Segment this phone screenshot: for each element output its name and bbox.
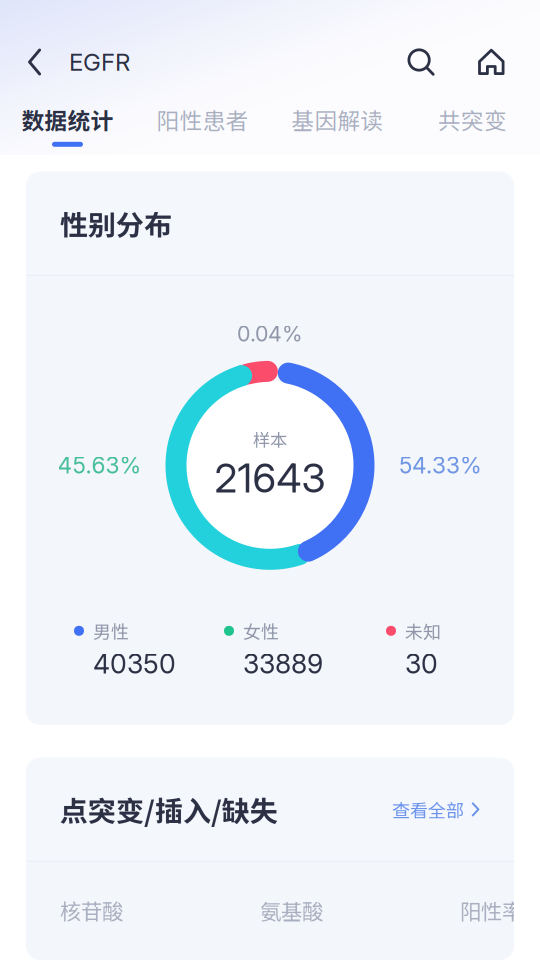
staticText: 样本 [253,427,287,452]
staticText: 21643 [214,454,325,502]
button[interactable]: 共突变 [405,97,540,155]
staticText: 女性 [243,618,279,644]
staticText: 基因解读 [291,103,383,136]
staticText: 未知 [405,618,441,644]
staticText: 30 [405,648,438,680]
staticText: EGFR [69,47,130,76]
staticText: 0.04% [237,321,303,347]
staticText: 54.33% [399,452,482,479]
staticText: 男性 [93,618,129,644]
staticText: 阳性率 [460,895,523,926]
button[interactable]: EGFR [0,35,146,89]
staticText: 数据统计 [21,103,113,136]
staticText: 40350 [93,648,176,680]
button[interactable]: Search [377,35,465,89]
staticText: 33889 [243,648,323,680]
button[interactable]: 数据统计 [0,97,135,155]
button[interactable]: Home [465,35,518,89]
staticText: 共突变 [438,103,507,136]
staticText: 阳性患者 [156,103,248,136]
staticText: 氨基酸 [260,895,323,926]
staticText: 性别分布 [60,203,172,243]
button[interactable]: 查看全部 [392,788,480,830]
staticText: 45.63% [57,452,141,479]
button[interactable]: 基因解读 [270,97,405,155]
staticText: 核苷酸 [60,895,123,926]
button[interactable]: 阳性患者 [135,97,270,155]
staticText: 点突变/插入/缺失 [60,789,278,829]
staticText: 查看全部 [392,796,464,822]
